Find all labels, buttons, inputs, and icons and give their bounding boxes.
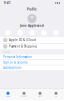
staticText: Subscriptions (3, 66, 21, 69)
button[interactable]: Personal Information (0, 54, 64, 59)
staticText: ACCOUNT (3, 51, 10, 53)
staticText: Profile (27, 8, 37, 11)
button[interactable] (2, 30, 14, 35)
button[interactable]: Sign-In & Security (0, 60, 64, 65)
staticText: Browse (21, 95, 27, 97)
button[interactable] (26, 30, 38, 35)
staticText: Home (6, 95, 10, 97)
button[interactable] (14, 30, 26, 35)
button[interactable] (50, 30, 62, 35)
staticText: Alerts (38, 95, 42, 97)
staticText: Me (55, 95, 57, 97)
button[interactable]: Subscriptions (0, 65, 64, 70)
staticText: Jane Appleseed (20, 24, 44, 27)
button[interactable]: Browse (16, 92, 32, 97)
button[interactable]: Me (48, 92, 64, 97)
staticText: Personal Information (3, 55, 32, 59)
button[interactable] (38, 30, 50, 35)
button[interactable]: Alerts (32, 92, 48, 97)
staticText: Apple ID & iCloud (9, 38, 36, 42)
button[interactable]: Apple ID & iCloud (0, 37, 64, 43)
button[interactable]: Home (0, 92, 16, 97)
staticText: 9:41 (4, 1, 11, 5)
staticText: Sign-In & Security (3, 61, 27, 64)
button[interactable]: Payment & Shipping (0, 43, 64, 49)
staticText: Payment & Shipping (9, 45, 37, 48)
